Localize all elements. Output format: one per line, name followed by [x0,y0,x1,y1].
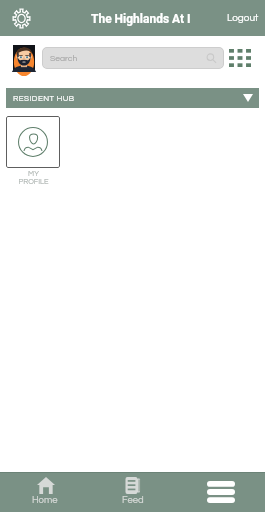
button[interactable]: Logout [217,5,265,31]
button[interactable] [6,116,60,168]
staticText: Search [50,54,78,63]
staticText: The Highlands At I [91,12,191,26]
button[interactable]: Search [42,47,224,69]
staticText: Home [32,495,58,505]
staticText: MY PROFILE [18,170,49,185]
staticText: Feed [122,495,144,505]
button[interactable]: RESIDENT HUB [6,88,259,108]
button[interactable]: Feed [89,473,177,512]
staticText: Logout [227,13,259,23]
button[interactable]: Home [0,473,89,512]
staticText: RESIDENT HUB [13,94,75,102]
button[interactable]: Apps grid [229,49,251,67]
button[interactable]: Profile photo [13,45,35,72]
button[interactable]: Menu [177,473,265,512]
button[interactable]: Settings [7,4,35,32]
